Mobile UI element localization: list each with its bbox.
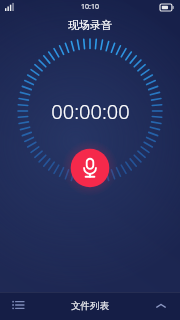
- staticText: 10:10: [81, 2, 99, 12]
- button[interactable]: Record: [62, 140, 118, 196]
- staticText: 现场录音: [68, 18, 112, 32]
- button[interactable]: 文件列表: [71, 300, 109, 312]
- staticText: 文件列表: [71, 300, 109, 312]
- button[interactable]: Expand: [152, 297, 170, 315]
- other: Record: [79, 157, 101, 179]
- button[interactable]: List: [8, 296, 28, 316]
- staticText: 00:00:00: [51, 98, 130, 125]
